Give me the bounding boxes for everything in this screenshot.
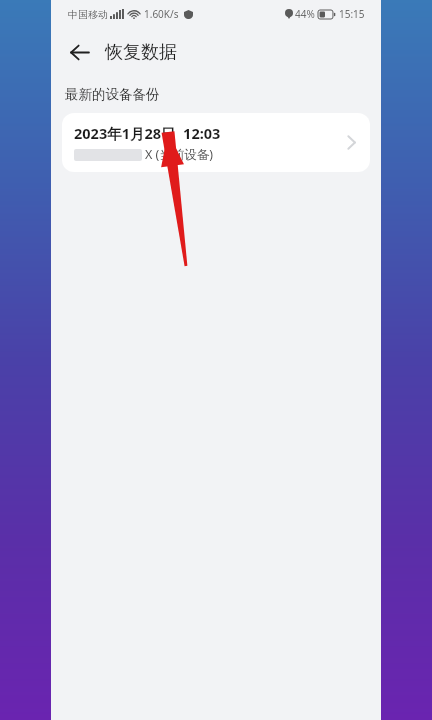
staticText: X (当前设备): [145, 146, 214, 163]
staticText: 最新的设备备份: [65, 86, 160, 103]
staticText: 恢复数据: [105, 41, 177, 64]
staticText: 44%: [295, 7, 315, 21]
staticText: 1.60K/s: [144, 7, 179, 21]
staticText: 2023年1月28日 12:03: [74, 123, 221, 143]
staticText: 15:15: [339, 7, 365, 21]
staticText: 中国移动: [68, 8, 108, 21]
button[interactable]: 2023年1月28日 12:03: [62, 113, 370, 172]
button[interactable]: Back: [59, 32, 99, 72]
